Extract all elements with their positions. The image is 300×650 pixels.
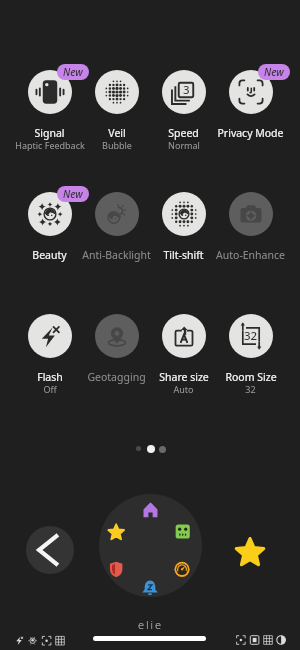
staticText: Flash <box>37 370 63 384</box>
staticText: Share size <box>159 370 209 384</box>
staticText: New <box>264 65 284 79</box>
button[interactable]: New <box>12 188 87 280</box>
button[interactable]: Scene menu <box>99 494 202 597</box>
button[interactable]: 3 <box>146 66 221 158</box>
staticText: 32 <box>244 328 258 344</box>
button[interactable]: Tilt-shift <box>146 188 221 280</box>
staticText: New <box>63 187 83 201</box>
button[interactable]: Veil <box>79 66 154 158</box>
staticText: Normal <box>168 139 200 151</box>
staticText: Auto <box>173 383 194 395</box>
staticText: 32 <box>245 383 256 395</box>
button[interactable]: Flash <box>12 310 87 402</box>
staticText: Anti-Backlight <box>82 248 151 262</box>
button[interactable]: New <box>213 66 288 158</box>
button[interactable]: Favorite <box>232 535 268 571</box>
staticText: 3 <box>183 82 190 98</box>
staticText: Privacy Mode <box>217 126 284 140</box>
button[interactable]: Back <box>26 526 74 574</box>
staticText: New <box>63 65 83 79</box>
button[interactable]: 32 <box>213 310 288 402</box>
staticText: Haptic Feedback <box>15 139 85 151</box>
staticText: Geotagging <box>87 370 146 384</box>
button[interactable]: Share size <box>146 310 221 402</box>
button[interactable]: Auto-Enhance <box>213 188 288 280</box>
staticText: Veil <box>108 126 126 140</box>
button[interactable]: New <box>12 66 87 158</box>
staticText: Speed <box>168 126 199 140</box>
staticText: Tilt-shift <box>163 248 204 262</box>
staticText: Beauty <box>32 248 67 262</box>
staticText: Bubble <box>102 139 132 151</box>
button[interactable]: Anti-Backlight <box>79 188 154 280</box>
staticText: Room Size <box>225 370 277 384</box>
button[interactable]: Geotagging <box>79 310 154 402</box>
staticText: Off <box>43 383 57 395</box>
staticText: elie <box>138 617 163 632</box>
staticText: Auto-Enhance <box>216 248 285 262</box>
staticText: Signal <box>34 126 65 140</box>
